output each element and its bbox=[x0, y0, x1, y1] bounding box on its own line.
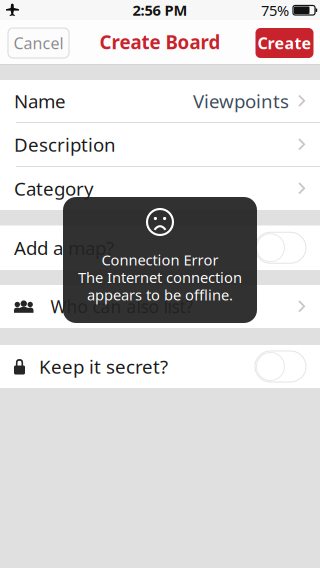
button[interactable]: Create bbox=[255, 28, 313, 58]
button[interactable]: Description bbox=[0, 123, 320, 166]
staticText: 2:56 PM bbox=[132, 0, 187, 20]
staticText: Category bbox=[14, 176, 94, 201]
button[interactable] bbox=[255, 351, 306, 382]
staticText: Viewpoints bbox=[193, 89, 289, 113]
staticText: Connection Error bbox=[101, 250, 218, 269]
staticText: The Internet connection bbox=[78, 267, 242, 287]
staticText: Keep it secret? bbox=[39, 354, 168, 379]
staticText: Description bbox=[14, 132, 116, 157]
staticText: 75% bbox=[261, 0, 289, 20]
button[interactable]: Name bbox=[0, 80, 320, 122]
staticText: Create Board bbox=[99, 30, 220, 54]
staticText: Name bbox=[14, 89, 66, 113]
button[interactable]: Who can also list? bbox=[0, 285, 320, 328]
button[interactable] bbox=[255, 232, 306, 263]
staticText: Create bbox=[257, 32, 311, 54]
staticText: Add a map? bbox=[14, 235, 114, 260]
staticText: Who can also list? bbox=[50, 295, 193, 318]
staticText: Cancel bbox=[13, 32, 63, 54]
button[interactable]: Cancel bbox=[8, 28, 69, 58]
button[interactable]: Category bbox=[0, 167, 320, 210]
staticText: appears to be offline. bbox=[87, 285, 233, 304]
